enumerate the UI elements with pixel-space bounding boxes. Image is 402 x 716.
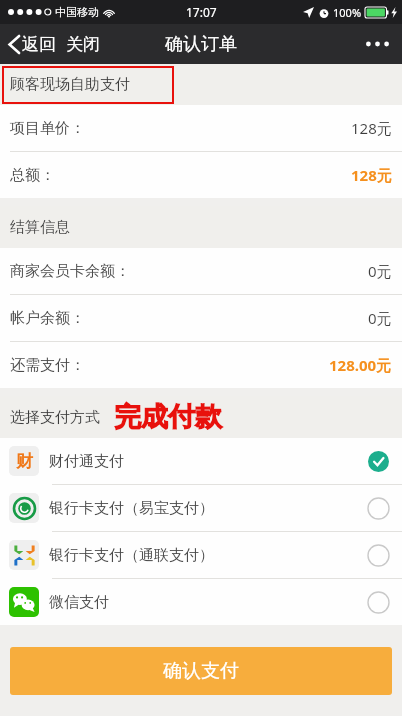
staticText: 17:07 (186, 4, 217, 20)
button[interactable]: 还需支付： (0, 342, 402, 388)
button[interactable]: 返回 (0, 28, 60, 61)
button[interactable]: More options (353, 31, 402, 57)
staticText: 中国移动 (55, 5, 99, 19)
button[interactable]: 微信支付 (0, 579, 402, 625)
staticText: 0元 (368, 261, 392, 281)
staticText: 银行卡支付（易宝支付） (49, 499, 367, 518)
button[interactable]: 商家会员卡余额： (0, 248, 402, 294)
button[interactable]: 银行卡支付（通联支付） (0, 532, 402, 578)
button[interactable]: 总额： (0, 152, 402, 198)
staticText: 商家会员卡余额： (10, 262, 130, 281)
staticText: 128.00元 (329, 355, 392, 375)
staticText: 微信支付 (49, 593, 367, 612)
staticText: 选择支付方式 (10, 408, 100, 427)
staticText: 总额： (10, 166, 55, 185)
staticText: 财付通支付 (49, 452, 367, 471)
staticText: 财 (16, 451, 33, 472)
staticText: 还需支付： (10, 356, 85, 375)
button[interactable]: 财 (0, 438, 402, 484)
staticText: 128元 (351, 118, 392, 138)
staticText: 确认支付 (163, 659, 239, 683)
staticText: 128元 (351, 165, 392, 185)
staticText: 返回 (22, 34, 56, 55)
staticText: 0元 (368, 308, 392, 328)
button[interactable]: 项目单价： (0, 105, 402, 151)
staticText: 项目单价： (10, 119, 85, 138)
staticText: 结算信息 (10, 218, 70, 237)
staticText: 关闭 (66, 34, 100, 55)
staticText: 顾客现场自助支付 (10, 75, 130, 94)
button[interactable]: 银行卡支付（易宝支付） (0, 485, 402, 531)
staticText: 银行卡支付（通联支付） (49, 546, 367, 565)
staticText: 帐户余额： (10, 309, 85, 328)
staticText: 完成付款 (114, 400, 222, 434)
button[interactable]: 关闭 (60, 28, 106, 61)
staticText: 确认订单 (165, 33, 237, 56)
staticText: 100% (333, 5, 362, 20)
button[interactable]: 确认支付 (10, 647, 392, 695)
button[interactable]: 帐户余额： (0, 295, 402, 341)
